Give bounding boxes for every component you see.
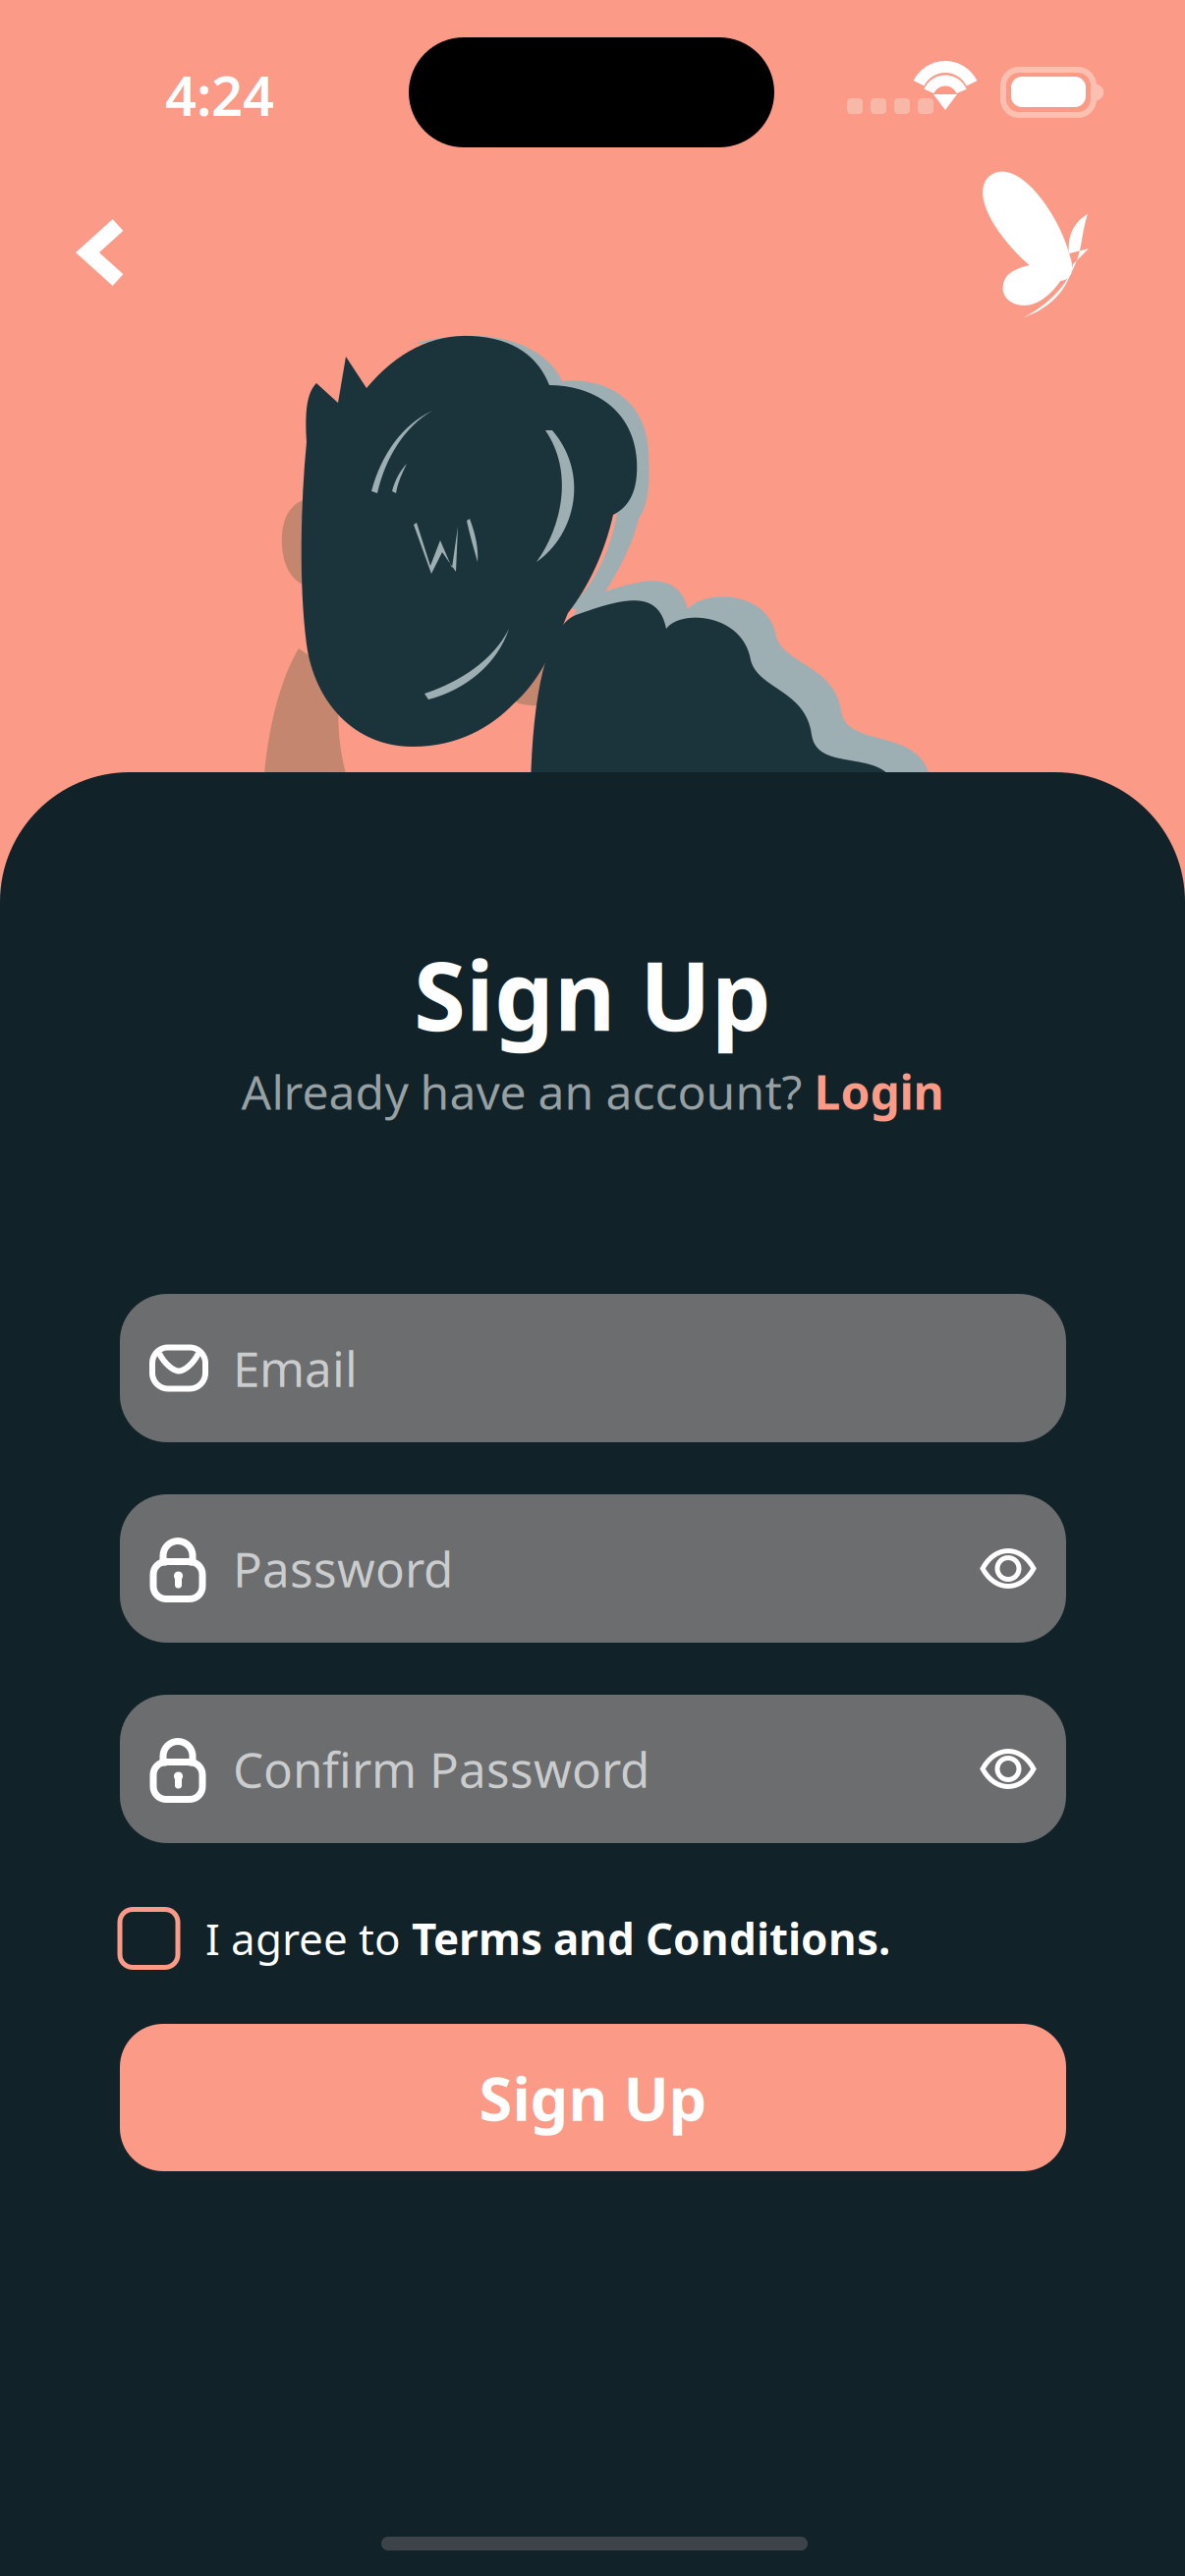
button[interactable]: Login — [814, 1060, 944, 1123]
staticText: Password — [233, 1536, 453, 1601]
button[interactable]: Agree to terms and conditions — [120, 1909, 178, 1967]
staticText: 4:24 — [165, 58, 274, 131]
staticText: Already have an account? — [241, 1060, 814, 1123]
staticText: I agree to — [205, 1910, 412, 1967]
button[interactable]: Back — [57, 207, 147, 298]
staticText: Sign Up — [479, 2058, 707, 2138]
staticText: Confirm Password — [233, 1737, 649, 1801]
button[interactable]: Terms and Conditions. — [412, 1910, 890, 1967]
button[interactable]: Sign Up — [120, 2024, 1066, 2171]
staticText: Login — [814, 1060, 944, 1123]
button[interactable]: Show Confirm Password — [980, 1747, 1037, 1791]
staticText: Sign Up — [414, 932, 771, 1057]
staticText: Email — [233, 1336, 358, 1400]
staticText: Terms and Conditions. — [412, 1910, 890, 1967]
button[interactable]: Show Password — [980, 1547, 1037, 1590]
